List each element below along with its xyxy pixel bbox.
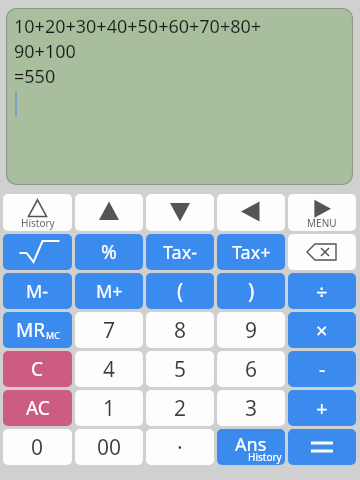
staticText: 7	[103, 316, 116, 345]
button[interactable]: 7	[75, 312, 143, 348]
button[interactable]: 00	[75, 429, 143, 465]
staticText: 90+100	[14, 39, 76, 64]
staticText: 6	[245, 355, 258, 384]
button[interactable]: M-	[3, 273, 72, 309]
staticText: )	[248, 277, 255, 306]
staticText: C	[31, 356, 44, 382]
button[interactable]: Ans	[217, 429, 285, 465]
button[interactable]: +	[288, 390, 356, 426]
button[interactable]: 3	[217, 390, 285, 426]
button[interactable]: -	[288, 351, 356, 387]
staticText: ·	[177, 433, 183, 462]
staticText: MENU	[307, 216, 337, 230]
staticText: 5	[174, 355, 187, 384]
button[interactable]: Equals	[288, 429, 356, 465]
staticText: ×	[316, 317, 328, 344]
staticText: MR	[16, 317, 46, 343]
button[interactable]: 8	[146, 312, 214, 348]
staticText: 0	[31, 433, 44, 462]
button[interactable]: 9	[217, 312, 285, 348]
button[interactable]: 2	[146, 390, 214, 426]
staticText: M-	[26, 279, 49, 304]
button[interactable]: MR	[3, 312, 72, 348]
button[interactable]: History	[3, 194, 72, 231]
staticText: 3	[245, 394, 258, 423]
button[interactable]: ×	[288, 312, 356, 348]
staticText: History	[21, 216, 55, 230]
button[interactable]: Down	[146, 194, 214, 231]
staticText: 00	[97, 433, 122, 462]
button[interactable]: 0	[3, 429, 72, 465]
button[interactable]: C	[3, 351, 72, 387]
button[interactable]: 5	[146, 351, 214, 387]
staticText: AC	[26, 395, 50, 421]
staticText: +	[316, 395, 328, 422]
button[interactable]: Up	[75, 194, 143, 231]
staticText: Ans	[235, 432, 267, 457]
staticText: 10+20+30+40+50+60+70+80+	[14, 14, 262, 39]
button[interactable]: 6	[217, 351, 285, 387]
button[interactable]: ·	[146, 429, 214, 465]
staticText: 1	[103, 394, 116, 423]
button[interactable]: AC	[3, 390, 72, 426]
button[interactable]: 1	[75, 390, 143, 426]
staticText: Tax+	[232, 240, 271, 265]
button[interactable]: %	[75, 234, 143, 270]
staticText: %	[101, 239, 117, 265]
staticText: Tax-	[163, 240, 197, 265]
button[interactable]: )	[217, 273, 285, 309]
button[interactable]: 4	[75, 351, 143, 387]
button[interactable]: Left	[217, 194, 285, 231]
staticText: MC	[46, 329, 60, 341]
staticText: History	[248, 450, 282, 464]
staticText: M+	[96, 279, 123, 304]
staticText: -	[319, 356, 326, 383]
button[interactable]: Backspace	[288, 234, 356, 270]
button[interactable]: Square root	[3, 234, 72, 270]
staticText: (	[177, 277, 184, 306]
staticText: 9	[245, 316, 258, 345]
button[interactable]: Tax+	[217, 234, 285, 270]
staticText: 2	[174, 394, 187, 423]
button[interactable]: MENU	[288, 194, 356, 231]
staticText: 8	[174, 316, 187, 345]
staticText: =550	[14, 64, 56, 89]
button[interactable]: (	[146, 273, 214, 309]
staticText: ÷	[316, 278, 328, 305]
button[interactable]: ÷	[288, 273, 356, 309]
staticText: 4	[103, 355, 116, 384]
button[interactable]: Tax-	[146, 234, 214, 270]
button[interactable]: M+	[75, 273, 143, 309]
